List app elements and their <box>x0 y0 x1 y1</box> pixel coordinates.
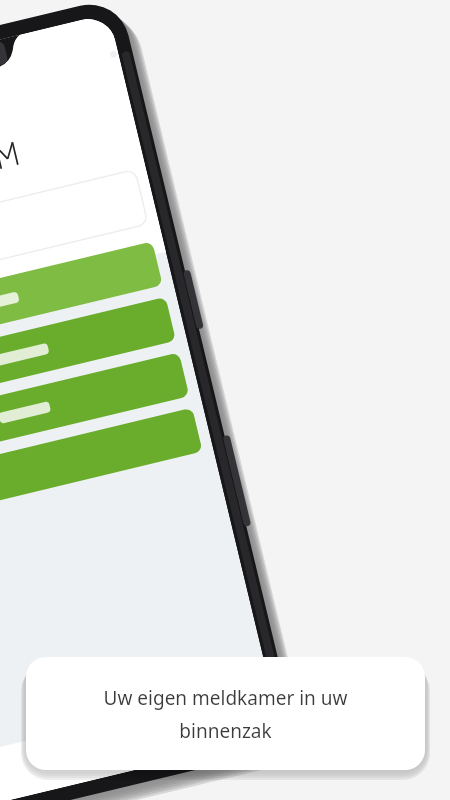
staticText: Uw eigen meldkamer in uw binnenzak <box>58 685 393 743</box>
other: SIACOM app shown on a phone <box>0 0 450 800</box>
button[interactable]: Uw eigen meldkamer in uw binnenzak <box>26 657 425 770</box>
